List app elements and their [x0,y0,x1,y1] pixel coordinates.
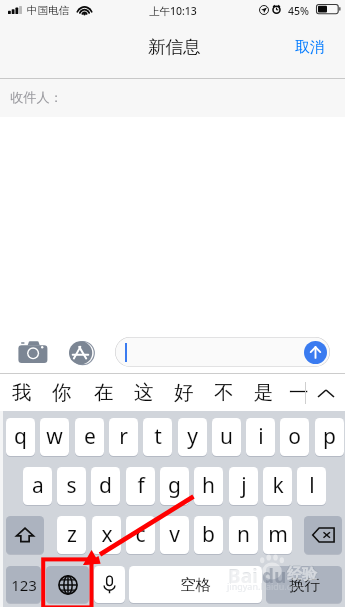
button[interactable]: n [229,516,258,554]
staticText: 在 [94,380,114,405]
staticText: 是 [254,380,274,405]
staticText: o [288,422,301,451]
button[interactable]: 你 [44,374,80,411]
button[interactable]: l [297,467,326,505]
button[interactable]: 好 [166,374,202,411]
staticText: t [154,422,162,451]
staticText: b [202,520,215,549]
staticText: i [258,422,264,451]
button[interactable]: h [194,467,223,505]
button[interactable]: 换行 [266,566,342,603]
staticText: a [32,471,44,500]
button[interactable]: f [126,467,155,505]
staticText: 换行 [289,575,320,595]
staticText: 你 [52,380,72,405]
button[interactable]: 取消 [285,28,335,66]
staticText: 123 [11,575,37,595]
staticText: 空格 [180,575,211,595]
button[interactable]: 不 [206,374,242,411]
button[interactable]: r [109,418,138,456]
button[interactable]: j [229,467,258,505]
button[interactable]: b [194,516,223,554]
button[interactable]: 我 [4,374,40,411]
staticText: e [84,422,96,451]
button[interactable]: d [91,467,120,505]
staticText: r [119,422,128,451]
staticText: 取消 [295,38,325,57]
staticText: 收件人： [10,89,63,106]
button[interactable]: a [23,467,52,505]
button[interactable]: g [160,467,189,505]
button[interactable]: Dictation [94,566,125,603]
button[interactable]: t [143,418,172,456]
staticText: 一 [289,380,309,405]
button[interactable]: 空格 [129,566,262,603]
button[interactable]: s [57,467,86,505]
staticText: 45% [288,4,309,18]
button[interactable]: m [263,516,292,554]
staticText: 好 [174,380,194,405]
button[interactable]: i [246,418,275,456]
staticText: m [268,520,288,549]
button[interactable]: Send [115,337,330,367]
staticText: x [101,520,113,549]
staticText: y [187,422,198,451]
staticText: Bai [229,564,258,589]
staticText: Bai [228,563,258,589]
button[interactable]: 是 [246,374,282,411]
staticText: n [237,520,250,549]
button[interactable]: o [280,418,309,456]
staticText: 经验 [286,564,318,584]
staticText: p [323,422,336,451]
staticText: du [262,563,287,589]
button[interactable]: App Store [67,340,95,366]
staticText: j [241,471,247,500]
button[interactable]: Send [304,341,327,364]
button[interactable]: 这 [126,374,162,411]
staticText: g [168,471,181,500]
button[interactable]: Delete [304,516,342,554]
button[interactable]: 在 [86,374,122,411]
button[interactable]: Camera [18,337,48,363]
button[interactable]: 123 [6,566,41,603]
button[interactable]: z [57,516,86,554]
staticText: 我 [12,380,32,405]
button[interactable]: q [6,418,35,456]
staticText: q [14,422,27,451]
staticText: f [137,471,145,500]
button[interactable]: Shift [6,516,44,554]
staticText: u [220,422,233,451]
button[interactable]: w [40,418,69,456]
button[interactable]: Switch keyboard [46,566,89,603]
staticText: d [99,471,112,500]
button[interactable]: k [263,467,292,505]
staticText: 新信息 [148,36,201,58]
staticText: 这 [134,380,154,405]
button[interactable]: p [315,418,344,456]
staticText: 中国电信 [27,4,69,17]
button[interactable]: u [212,418,241,456]
button[interactable]: y [178,418,207,456]
button[interactable]: 一 [281,374,317,411]
staticText: 上午10:13 [149,4,197,18]
staticText: jingyan.baidu.com [227,580,305,592]
button[interactable]: 收件人： [0,79,345,117]
staticText: 经验 [287,565,317,584]
staticText: s [66,471,77,500]
staticText: c [135,520,146,549]
staticText: v [169,520,180,549]
button[interactable]: v [160,516,189,554]
staticText: k [272,471,284,500]
staticText: l [309,471,315,500]
button[interactable]: x [92,516,121,554]
staticText: z [67,520,77,549]
button[interactable]: e [75,418,104,456]
staticText: w [46,422,63,451]
button[interactable]: c [126,516,155,554]
staticText: 不 [214,380,234,405]
button[interactable]: Expand suggestions [306,374,344,411]
staticText: h [202,471,215,500]
